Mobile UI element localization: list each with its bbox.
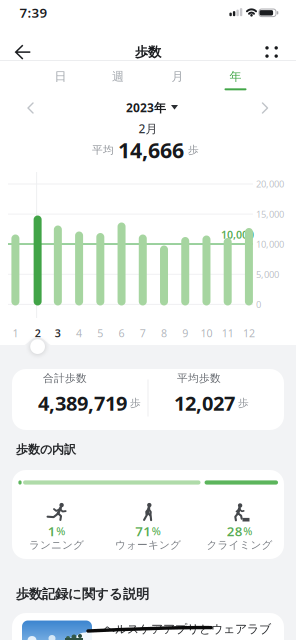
staticText: 月	[171, 69, 183, 84]
button[interactable]: Previous year	[25, 100, 41, 116]
staticText: 71	[135, 522, 151, 540]
button[interactable]: 1	[6, 326, 24, 340]
staticText: 年	[229, 69, 241, 84]
button[interactable]: 9	[176, 326, 194, 340]
staticText: 合計歩数	[43, 372, 87, 385]
button[interactable]: 11	[219, 326, 237, 340]
staticText: 2月	[138, 120, 157, 136]
staticText: 2	[35, 326, 41, 340]
button[interactable]: 3	[49, 326, 67, 340]
staticText: 0	[256, 298, 261, 311]
staticText: 歩	[188, 143, 199, 156]
button[interactable]: 8	[155, 326, 173, 340]
staticText: 歩	[238, 396, 249, 410]
staticText: 2023年	[126, 99, 166, 115]
staticText: 12	[243, 326, 255, 340]
staticText: 20,000	[256, 178, 284, 190]
staticText: 4,389,719	[38, 390, 127, 416]
button[interactable]: 6	[113, 326, 131, 340]
staticText: ランニング	[29, 538, 84, 551]
staticText: 28	[227, 522, 243, 540]
staticText: 7	[140, 326, 146, 340]
staticText: 9	[182, 326, 188, 340]
button[interactable]: 2023年	[126, 99, 178, 115]
staticText: 週	[112, 69, 124, 84]
staticText: %	[56, 524, 65, 538]
button[interactable]: 4	[70, 326, 88, 340]
button[interactable]: 年	[212, 63, 258, 89]
staticText: %	[243, 524, 252, 538]
button[interactable]: 週	[95, 63, 141, 89]
button[interactable]: 7	[134, 326, 152, 340]
staticText: 8	[161, 326, 167, 340]
staticText: %	[152, 524, 161, 538]
button[interactable]: Month slider	[30, 339, 45, 354]
staticText: クライミング	[206, 538, 272, 551]
staticText: 歩	[130, 396, 141, 410]
staticText: 5	[97, 326, 103, 340]
button[interactable]: 5	[91, 326, 109, 340]
staticText: 11	[222, 326, 234, 340]
staticText: 日	[54, 69, 66, 84]
staticText: 平均歩数	[177, 372, 221, 385]
button[interactable]: ヘルスケアアプリとウェアラブ	[12, 613, 284, 640]
staticText: 1	[12, 326, 18, 340]
button[interactable]: 2	[29, 326, 47, 340]
staticText: ウォーキング	[115, 538, 181, 551]
staticText: ヘルスケアアプリとウェアラブ	[103, 622, 271, 636]
staticText: 歩数の内訳	[16, 442, 76, 457]
staticText: 7:39	[19, 4, 47, 21]
staticText: 6	[119, 326, 125, 340]
staticText: 歩数記録に関する説明	[16, 586, 149, 602]
staticText: 12,027	[174, 390, 235, 416]
button[interactable]: Next year	[254, 100, 270, 116]
button[interactable]: Back	[15, 45, 31, 60]
staticText: 1	[48, 522, 56, 540]
staticText: 5,000	[256, 268, 279, 280]
staticText: 歩数	[135, 44, 161, 60]
button[interactable]: 12	[240, 326, 258, 340]
button[interactable]: 日	[37, 63, 83, 89]
staticText: 10,000	[221, 227, 254, 242]
staticText: 14,666	[118, 136, 184, 164]
staticText: 10,000	[256, 238, 284, 250]
button[interactable]: 月	[154, 63, 200, 89]
button[interactable]: 10	[197, 326, 215, 340]
staticText: 3	[55, 326, 61, 340]
staticText: 4	[76, 326, 82, 340]
button[interactable]: Menu	[261, 42, 282, 62]
staticText: 平均	[92, 143, 114, 156]
staticText: 15,000	[256, 208, 284, 220]
staticText: 10	[200, 326, 212, 340]
